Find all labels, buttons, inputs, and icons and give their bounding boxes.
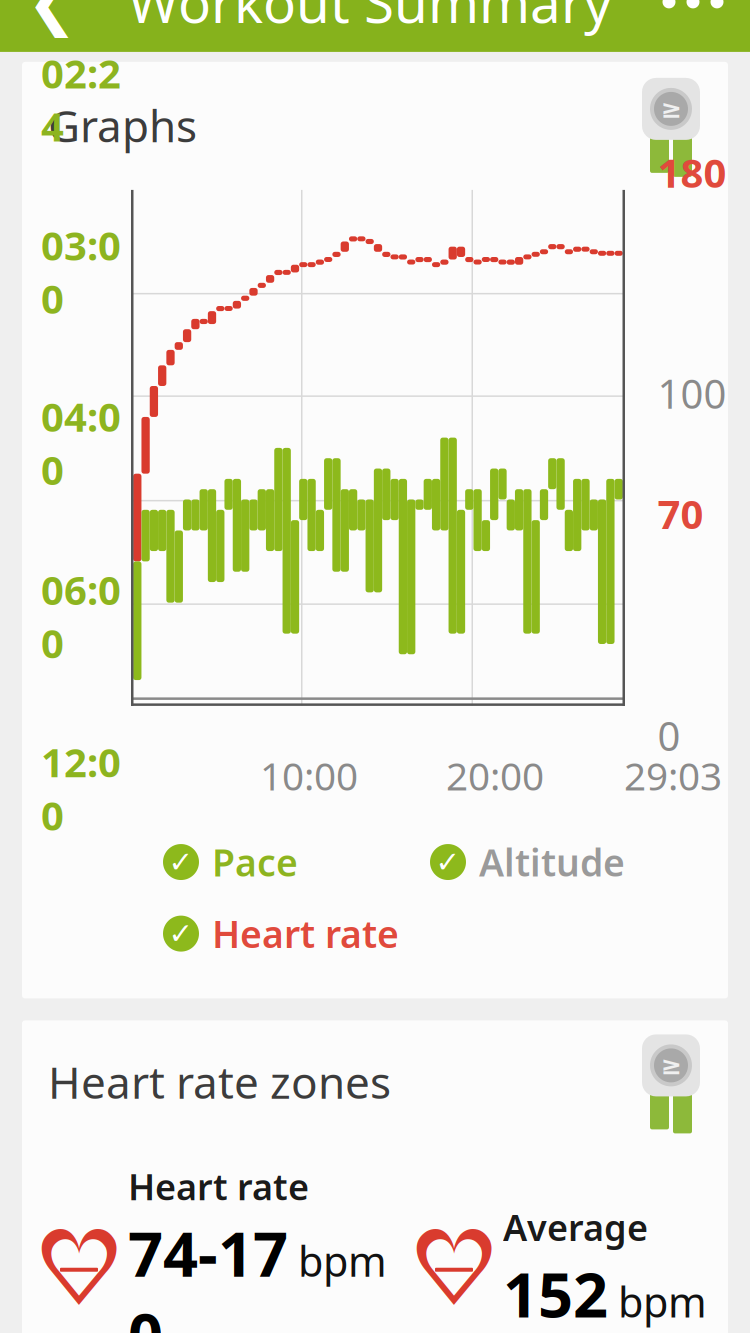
staticText: Heart rate bbox=[212, 909, 399, 958]
staticText: Heart rate zones bbox=[48, 1052, 391, 1111]
staticText: 20:00 bbox=[446, 750, 544, 801]
staticText: ≥ bbox=[660, 1051, 681, 1080]
staticText: Graphs bbox=[48, 96, 197, 154]
button[interactable]: Back bbox=[14, 0, 90, 42]
staticText: 02:24 bbox=[41, 46, 121, 152]
button[interactable]: ✓ bbox=[163, 837, 298, 887]
staticText: ✓ bbox=[435, 845, 460, 879]
staticText: ✓ bbox=[168, 917, 193, 950]
staticText: 12:00 bbox=[41, 735, 121, 841]
staticText: ❮ bbox=[26, 0, 77, 37]
staticText: ≥ bbox=[660, 94, 681, 123]
staticText: 04:00 bbox=[41, 390, 121, 496]
staticText: Workout Summary bbox=[128, 0, 612, 38]
staticText: 74-170 bbox=[128, 1212, 288, 1333]
staticText: ♥ bbox=[419, 1225, 488, 1313]
staticText: 10:00 bbox=[260, 750, 358, 801]
staticText: Average bbox=[503, 1203, 648, 1251]
button[interactable]: ✓ bbox=[430, 837, 625, 887]
staticText: ✓ bbox=[168, 845, 193, 879]
staticText: 152 bbox=[503, 1253, 608, 1333]
staticText: ♥ bbox=[44, 1225, 113, 1313]
button[interactable]: ✓ bbox=[163, 909, 399, 958]
staticText: 100 bbox=[657, 367, 726, 420]
staticText: 180 bbox=[657, 146, 726, 199]
staticText: 29:03 bbox=[624, 750, 722, 801]
staticText: ♥ bbox=[407, 1210, 500, 1328]
staticText: bpm bbox=[618, 1274, 707, 1329]
staticText: 0 bbox=[657, 709, 680, 762]
button[interactable]: More options bbox=[650, 0, 736, 42]
staticText: Heart rate bbox=[128, 1162, 309, 1210]
staticText: Altitude bbox=[479, 837, 625, 887]
staticText: ♥ bbox=[32, 1210, 125, 1328]
staticText: 70 bbox=[657, 487, 703, 540]
staticText: bpm bbox=[298, 1233, 387, 1288]
staticText: Pace bbox=[212, 837, 298, 887]
staticText: 03:00 bbox=[41, 218, 121, 325]
staticText: 06:00 bbox=[41, 563, 121, 669]
